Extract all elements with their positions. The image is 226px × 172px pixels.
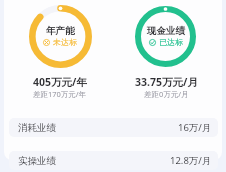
staticText: 16万/月 [178,121,212,134]
staticText: 405万元/年 [33,75,87,89]
staticText: 实操业绩 [18,155,56,167]
staticText: 差距0万元/月 [144,89,189,99]
staticText: 差距170万元/年 [33,89,87,99]
staticText: 未达标 [53,37,77,47]
button[interactable]: 实操业绩 [9,151,218,170]
staticText: 12.8万/月 [170,154,212,167]
button[interactable]: 消耗业绩 [9,118,218,137]
staticText: 消耗业绩 [18,122,56,134]
staticText: 现金业绩 [147,25,185,37]
staticText: 年产能 [46,25,75,37]
staticText: 已达标 [159,37,183,47]
staticText: 33.75万元/月 [135,75,198,89]
